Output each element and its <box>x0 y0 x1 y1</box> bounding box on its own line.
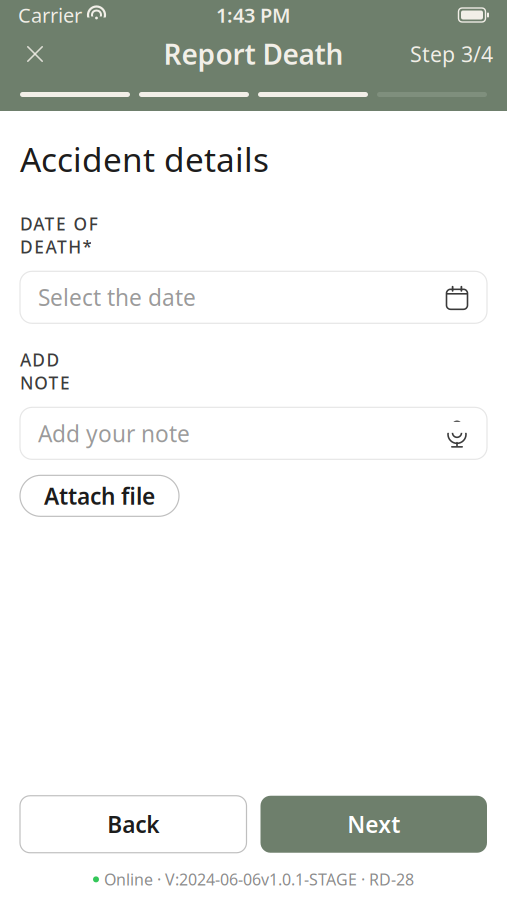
staticText: Attach file <box>44 481 155 511</box>
staticText: 1:43 PM <box>216 2 291 28</box>
button[interactable]: Next <box>260 796 487 853</box>
staticText: Report Death <box>163 35 343 73</box>
staticText: Back <box>107 809 159 839</box>
button[interactable]: Close <box>14 33 56 75</box>
staticText: Step 3/4 <box>410 40 493 68</box>
staticText: Carrier <box>18 2 82 28</box>
staticText: Add your note <box>38 418 190 448</box>
staticText: Accident details <box>20 137 269 181</box>
button[interactable]: Attach file <box>20 475 179 516</box>
staticText: Next <box>347 809 400 839</box>
button[interactable]: Select the date <box>20 271 487 323</box>
staticText: Select the date <box>38 282 196 312</box>
button[interactable]: Back <box>20 796 246 853</box>
staticText: ADD NOTE <box>20 348 70 394</box>
button[interactable]: Add your note <box>20 407 487 459</box>
staticText: DATE OF DEATH* <box>20 212 98 258</box>
staticText: Online · V:2024-06-06v1.0.1-STAGE · RD-2… <box>104 869 414 890</box>
